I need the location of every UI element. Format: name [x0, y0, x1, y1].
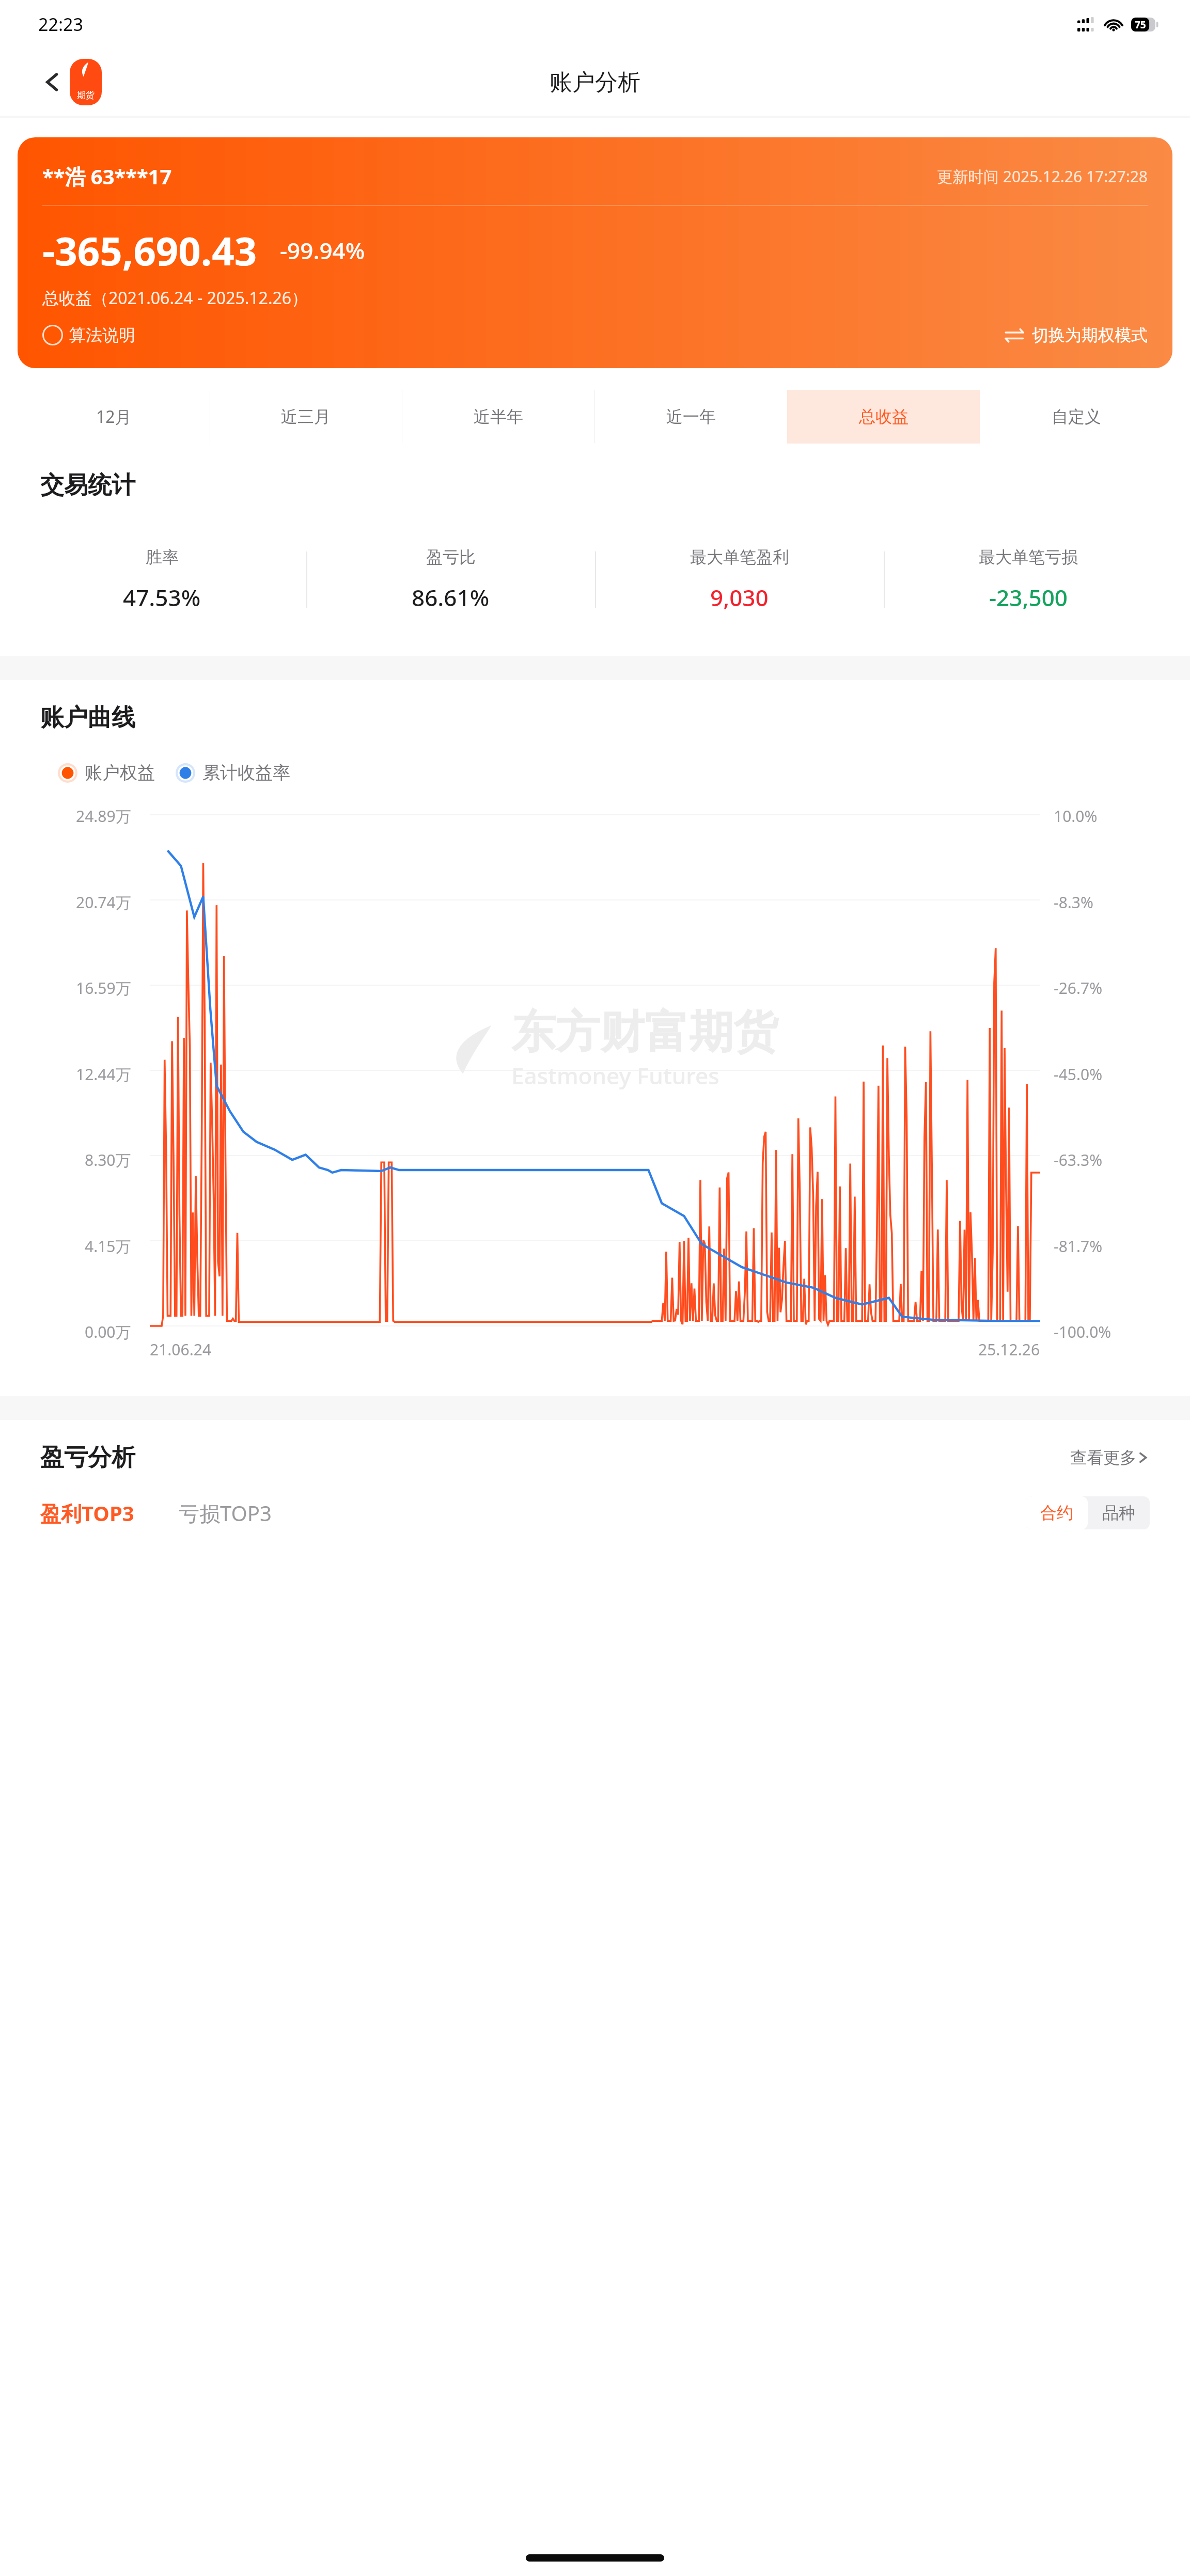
staticText: 切换为期权模式	[1032, 325, 1148, 345]
staticText: 最大单笔亏损	[979, 547, 1078, 567]
staticText: -81.7%	[1054, 1236, 1103, 1257]
button[interactable]: 品种	[1102, 1503, 1135, 1523]
button[interactable]: 算法说明	[42, 325, 135, 345]
staticText: 20.74万	[76, 892, 131, 913]
button[interactable]: 近半年	[402, 390, 594, 444]
button[interactable]: 亏损TOP3	[179, 1499, 272, 1527]
staticText: 盈亏分析	[40, 1443, 135, 1473]
staticText: 12月	[96, 405, 132, 428]
staticText: **浩 63***17	[42, 162, 172, 191]
staticText: 4.15万	[85, 1236, 131, 1257]
staticText: 品种	[1102, 1503, 1135, 1523]
staticText: 东方财富期货	[511, 1004, 778, 1060]
staticText: -45.0%	[1054, 1064, 1103, 1085]
staticText: 22:23	[38, 12, 83, 36]
staticText: -8.3%	[1054, 892, 1093, 913]
staticText: 16.59万	[76, 977, 131, 999]
staticText: 盈亏比	[426, 547, 476, 567]
staticText: 算法说明	[69, 325, 135, 345]
staticText: 0.00万	[85, 1321, 131, 1342]
staticText: 总收益（2021.06.24 - 2025.12.26）	[42, 287, 308, 309]
staticText: 合约	[1040, 1503, 1073, 1523]
staticText: 近一年	[666, 406, 716, 427]
staticText: 账户权益	[85, 762, 155, 784]
staticText: 近三月	[281, 406, 331, 427]
button[interactable]: 盈亏分析	[40, 1443, 1150, 1473]
staticText: 9,030	[710, 582, 769, 613]
staticText: 累计收益率	[202, 762, 290, 784]
staticText: 86.61%	[412, 582, 490, 613]
button[interactable]: 12月	[18, 390, 210, 444]
button[interactable]: Futures logo	[70, 59, 102, 105]
button[interactable]: 盈利TOP3	[40, 1499, 134, 1527]
staticText: -63.3%	[1054, 1149, 1103, 1171]
button[interactable]: 总收益	[787, 390, 980, 444]
staticText: -365,690.43	[42, 224, 257, 277]
staticText: 12.44万	[76, 1064, 131, 1085]
button[interactable]: **浩 63***17	[18, 137, 1172, 368]
staticText: 最大单笔盈利	[690, 547, 789, 567]
staticText: 24.89万	[76, 805, 131, 827]
staticText: 8.30万	[85, 1149, 131, 1171]
staticText: 胜率	[146, 547, 179, 567]
staticText: 查看更多	[1070, 1447, 1136, 1468]
button[interactable]: 切换为期权模式	[1004, 325, 1148, 345]
staticText: Eastmoney Futures	[511, 1060, 719, 1091]
staticText: 总收益	[859, 406, 909, 427]
staticText: -26.7%	[1054, 977, 1103, 999]
staticText: -100.0%	[1054, 1321, 1111, 1342]
staticText: -23,500	[989, 582, 1068, 613]
button[interactable]: Back	[37, 67, 68, 98]
staticText: 10.0%	[1054, 805, 1098, 827]
staticText: 25.12.26	[978, 1339, 1040, 1360]
staticText: 自定义	[1052, 406, 1101, 427]
staticText: 47.53%	[123, 582, 201, 613]
button[interactable]: 合约	[1040, 1503, 1073, 1523]
button[interactable]: 自定义	[980, 390, 1172, 444]
staticText: 账户分析	[550, 68, 640, 97]
staticText: 账户曲线	[40, 703, 135, 733]
staticText: 近半年	[474, 406, 523, 427]
staticText: 更新时间 2025.12.26 17:27:28	[937, 166, 1148, 187]
staticText: 21.06.24	[150, 1339, 212, 1360]
staticText: 75	[1135, 18, 1146, 31]
staticText: 期货	[77, 90, 95, 101]
staticText: 交易统计	[40, 470, 135, 500]
button[interactable]: 近三月	[210, 390, 402, 444]
button[interactable]: 近一年	[594, 390, 787, 444]
staticText: -99.94%	[280, 235, 365, 266]
